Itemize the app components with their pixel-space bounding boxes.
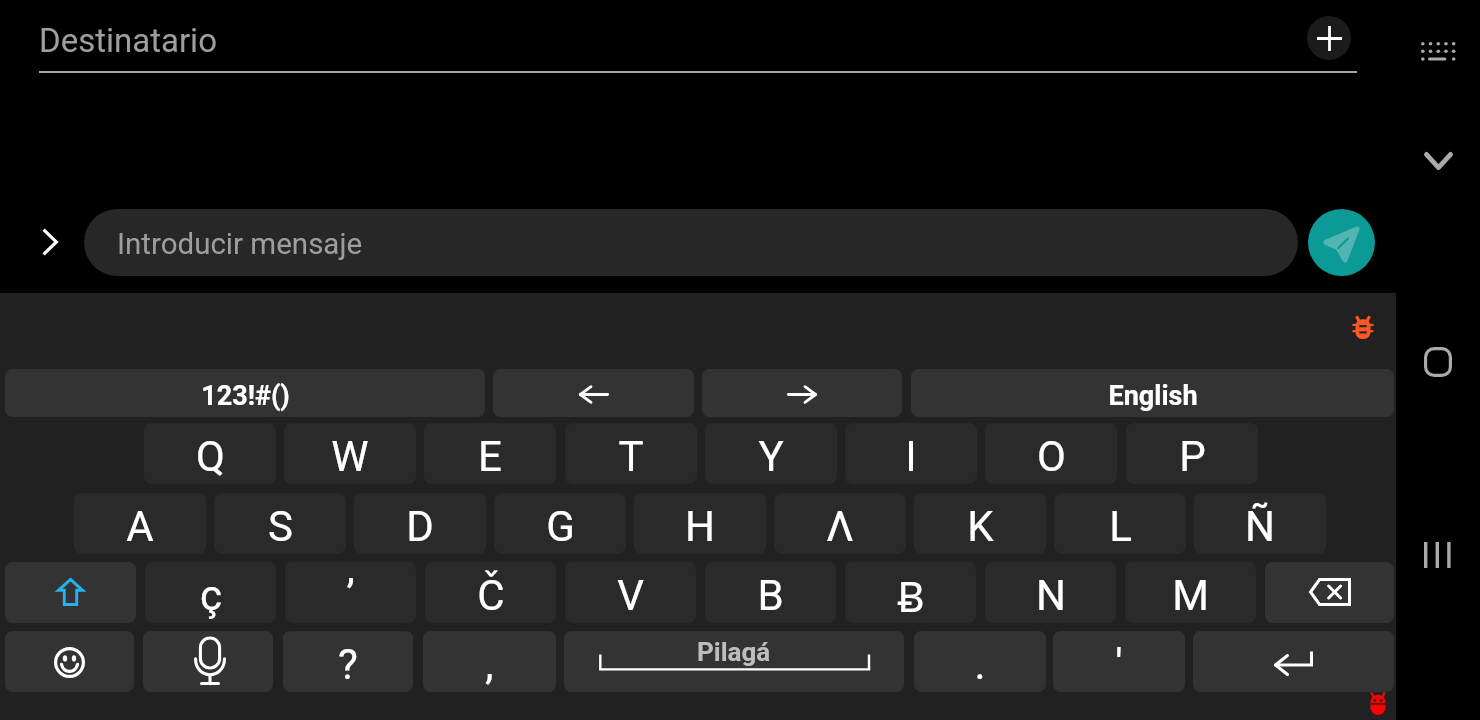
other: Move right — [787, 385, 817, 404]
staticText: , — [485, 640, 494, 689]
staticText: B — [757, 571, 784, 620]
button[interactable]: Backspace — [1265, 562, 1394, 623]
button[interactable]: 123!#() — [5, 369, 485, 417]
button[interactable]: Move right — [702, 369, 902, 417]
other: Enter — [1274, 650, 1313, 675]
button[interactable]: B — [705, 562, 836, 623]
button[interactable]: E — [424, 423, 556, 484]
staticText: W — [331, 432, 369, 481]
button[interactable]: Recent apps — [1416, 533, 1459, 576]
staticText: Ñ — [1245, 502, 1275, 551]
staticText: Q — [196, 432, 225, 481]
button[interactable]: ’ — [285, 562, 416, 623]
button[interactable]: Hide keyboard — [1413, 141, 1463, 181]
staticText: V — [617, 571, 644, 620]
staticText: English — [1108, 380, 1198, 412]
button[interactable]: D — [354, 493, 486, 554]
button[interactable]: M — [1125, 562, 1256, 623]
button[interactable]: Ƀ — [845, 562, 976, 623]
button[interactable]: Add recipient — [1307, 16, 1351, 60]
button[interactable]: Introducir mensaje — [84, 209, 1298, 276]
button[interactable]: Y — [705, 423, 837, 484]
button[interactable]: Q — [144, 423, 276, 484]
button[interactable]: English — [911, 369, 1394, 417]
staticText: S — [268, 502, 293, 551]
staticText: L — [1109, 502, 1132, 551]
staticText: Ƀ — [897, 567, 925, 623]
staticText: Č — [477, 571, 505, 620]
button[interactable]: V — [565, 562, 696, 623]
button[interactable]: ? — [283, 631, 413, 692]
staticText: . — [974, 640, 986, 689]
button[interactable]: . — [914, 631, 1046, 692]
staticText: Λ — [826, 502, 854, 551]
staticText: E — [478, 432, 502, 481]
other: Shift — [57, 578, 84, 606]
other: Move left — [579, 385, 609, 404]
button[interactable]: Voice input — [143, 631, 273, 692]
button[interactable]: , — [423, 631, 556, 692]
button[interactable]: Č — [425, 562, 556, 623]
staticText: 123!#() — [201, 380, 290, 412]
button[interactable]: P — [1126, 423, 1258, 484]
button[interactable]: ' — [1053, 631, 1185, 692]
button[interactable]: H — [634, 493, 766, 554]
button[interactable]: Pilagá — [564, 631, 904, 692]
button[interactable]: W — [284, 423, 416, 484]
button[interactable]: A — [74, 493, 206, 554]
staticText: I — [905, 432, 917, 481]
staticText: Pilagá — [697, 637, 771, 667]
staticText: Y — [758, 432, 784, 481]
staticText: ’ — [346, 571, 355, 620]
staticText: ? — [338, 640, 358, 689]
staticText: ç — [200, 571, 222, 620]
button[interactable]: G — [494, 493, 626, 554]
staticText: G — [546, 502, 575, 551]
button[interactable]: N — [985, 562, 1116, 623]
button[interactable]: Λ — [774, 493, 906, 554]
staticText: A — [126, 502, 154, 551]
button[interactable]: Ñ — [1194, 493, 1326, 554]
button[interactable]: ç — [145, 562, 276, 623]
button[interactable]: I — [845, 423, 977, 484]
staticText: Introducir mensaje — [117, 227, 363, 262]
other: Backspace — [1309, 578, 1351, 606]
button[interactable]: S — [214, 493, 346, 554]
staticText: K — [967, 502, 994, 551]
button[interactable]: L — [1054, 493, 1186, 554]
staticText: M — [1172, 571, 1209, 620]
staticText: N — [1036, 571, 1066, 620]
button[interactable]: Move left — [493, 369, 694, 417]
staticText: T — [618, 432, 644, 481]
button[interactable]: Keyboard — [1414, 31, 1462, 71]
button[interactable]: Home — [1416, 340, 1459, 383]
staticText: D — [406, 502, 434, 551]
button[interactable]: K — [914, 493, 1046, 554]
button[interactable]: Expand — [28, 217, 70, 265]
button[interactable]: T — [565, 423, 697, 484]
button[interactable]: Enter — [1193, 631, 1394, 692]
button[interactable]: Shift — [5, 562, 136, 623]
other: Voice input — [194, 638, 226, 685]
staticText: P — [1179, 432, 1206, 481]
staticText: O — [1037, 432, 1066, 481]
button[interactable]: O — [985, 423, 1117, 484]
staticText: H — [685, 502, 715, 551]
button[interactable]: Send — [1308, 209, 1375, 276]
other: Emoji — [54, 647, 85, 678]
button[interactable]: Emoji — [5, 631, 134, 692]
staticText: Destinatario — [39, 21, 217, 60]
staticText: ' — [1115, 640, 1123, 689]
